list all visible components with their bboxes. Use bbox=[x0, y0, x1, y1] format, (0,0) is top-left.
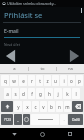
button[interactable]: Přehled bbox=[56, 128, 84, 140]
staticText: v bbox=[42, 104, 45, 110]
staticText: d bbox=[22, 91, 25, 97]
staticText: j bbox=[57, 91, 59, 97]
button[interactable]: d bbox=[20, 88, 27, 99]
staticText: o bbox=[70, 78, 73, 84]
staticText: l bbox=[75, 91, 77, 97]
button[interactable]: Další bbox=[67, 48, 81, 64]
button[interactable]: p bbox=[76, 75, 83, 86]
staticText: E-mail bbox=[4, 28, 19, 35]
button[interactable]: E-mail bbox=[4, 28, 80, 38]
staticText: na bbox=[68, 66, 73, 72]
button[interactable]: Domů bbox=[28, 128, 56, 140]
button[interactable]: Zpět bbox=[0, 128, 28, 140]
staticText: i bbox=[63, 78, 65, 84]
button[interactable]: z bbox=[44, 75, 51, 86]
staticText: p bbox=[78, 78, 81, 84]
button[interactable]: h bbox=[45, 88, 53, 99]
staticText: . bbox=[63, 117, 65, 123]
button[interactable]: a bbox=[4, 88, 11, 99]
button[interactable]: w bbox=[10, 75, 18, 86]
button[interactable]: na bbox=[57, 64, 84, 73]
button[interactable]: to bbox=[29, 64, 56, 73]
staticText: s bbox=[14, 91, 17, 97]
button[interactable]: i bbox=[60, 75, 67, 86]
staticText: t bbox=[39, 78, 41, 84]
staticText: Přihlásit se bbox=[4, 10, 43, 20]
staticText: c bbox=[34, 104, 37, 110]
staticText: q bbox=[4, 78, 7, 84]
button[interactable]: n bbox=[56, 101, 63, 112]
button[interactable]: y bbox=[14, 101, 22, 112]
button[interactable]: m bbox=[64, 101, 71, 112]
staticText: m bbox=[65, 104, 70, 110]
button[interactable]: , bbox=[14, 114, 22, 125]
button[interactable]: r bbox=[28, 75, 35, 86]
staticText: Další bbox=[72, 117, 80, 122]
button[interactable]: Smazat bbox=[72, 101, 83, 112]
button[interactable]: Shift bbox=[1, 101, 13, 112]
button[interactable]: l bbox=[72, 88, 80, 99]
button[interactable]: s bbox=[12, 88, 19, 99]
button[interactable]: Další bbox=[68, 114, 83, 125]
staticText: x bbox=[26, 104, 29, 110]
staticText: n bbox=[58, 104, 61, 110]
button[interactable]: q bbox=[1, 75, 9, 86]
button[interactable]: v bbox=[40, 101, 47, 112]
staticText: a bbox=[6, 91, 9, 97]
button[interactable]: e bbox=[19, 75, 27, 86]
staticText: z bbox=[46, 78, 49, 84]
staticText: b bbox=[50, 104, 53, 110]
button[interactable]: b bbox=[48, 101, 55, 112]
staticText: g bbox=[39, 91, 42, 97]
button[interactable]: Mezerník bbox=[31, 114, 59, 125]
staticText: r bbox=[31, 78, 33, 84]
staticText: u bbox=[54, 78, 57, 84]
staticText: Ukládám snímku obrazovky… bbox=[7, 1, 57, 6]
button[interactable]: Předchozí bbox=[3, 48, 17, 64]
button[interactable]: c bbox=[32, 101, 39, 112]
button[interactable]: u bbox=[52, 75, 59, 86]
button[interactable]: k bbox=[63, 88, 71, 99]
button[interactable]: x bbox=[23, 101, 31, 112]
button[interactable]: t bbox=[36, 75, 43, 86]
button[interactable]: a bbox=[0, 64, 28, 73]
staticText: Nová účet bbox=[4, 42, 20, 47]
button[interactable]: ?123 bbox=[1, 114, 13, 125]
button[interactable]: o bbox=[68, 75, 75, 86]
staticText: h bbox=[48, 91, 51, 97]
button[interactable]: g bbox=[36, 88, 44, 99]
staticText: ?123 bbox=[4, 118, 11, 122]
button[interactable]: f bbox=[28, 88, 35, 99]
staticText: , bbox=[17, 117, 19, 123]
staticText: f bbox=[31, 91, 33, 97]
staticText: k bbox=[66, 91, 69, 97]
staticText: to bbox=[40, 66, 45, 72]
button[interactable]: Emoji bbox=[23, 114, 30, 125]
button[interactable]: j bbox=[54, 88, 62, 99]
staticText: w bbox=[12, 78, 16, 84]
staticText: a bbox=[13, 66, 16, 72]
staticText: y bbox=[17, 104, 20, 110]
staticText: e bbox=[22, 78, 25, 84]
